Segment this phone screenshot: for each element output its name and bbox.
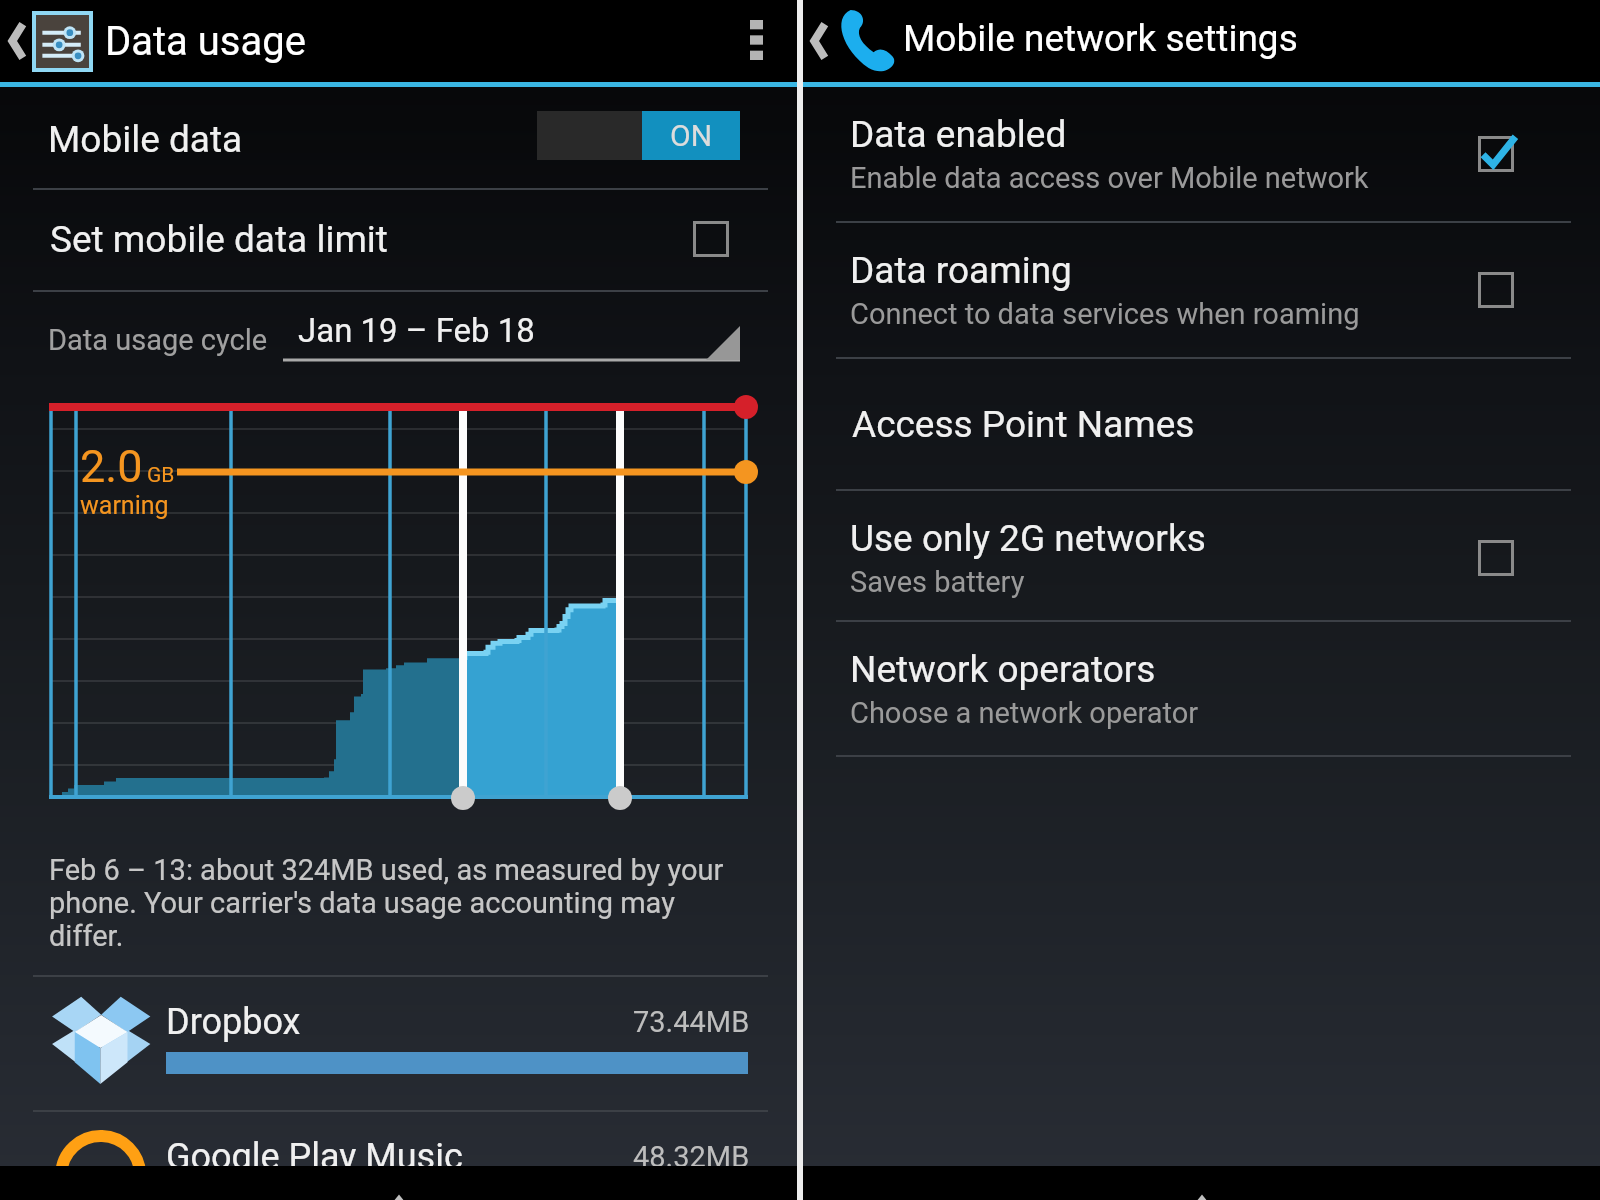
button[interactable]: Set mobile data limit <box>0 189 797 290</box>
button[interactable]: Navigate up <box>803 0 899 82</box>
staticText: Network operators <box>850 648 1156 691</box>
button[interactable]: Data usage <box>0 0 306 82</box>
button[interactable]: Data enabled <box>803 87 1600 220</box>
button[interactable]: Mobile network settings <box>899 0 1499 82</box>
staticText: Choose a network operator <box>850 696 1199 730</box>
staticText: 73.44MB <box>633 1005 750 1039</box>
staticText: Use only 2G networks <box>850 517 1206 560</box>
staticText: Set mobile data limit <box>50 218 388 261</box>
button[interactable]: Use only 2G networks <box>803 491 1600 624</box>
staticText: warning <box>80 491 169 520</box>
staticText: Dropbox <box>166 1001 301 1043</box>
button[interactable]: Unchecked <box>1478 272 1514 308</box>
staticText: Mobile network settings <box>903 17 1298 60</box>
staticText: Enable data access over Mobile network <box>850 161 1369 195</box>
staticText: 2.0 <box>80 440 143 493</box>
button[interactable]: Google Play Music <box>0 1112 797 1200</box>
button[interactable]: Network operators <box>803 622 1600 755</box>
staticText: Saves battery <box>850 565 1025 599</box>
staticText: Data enabled <box>850 113 1067 156</box>
staticText: Data roaming <box>850 249 1072 292</box>
button[interactable]: Mobile data <box>0 87 797 187</box>
staticText: Data usage cycle <box>48 323 268 357</box>
button[interactable]: Checked <box>1478 136 1514 172</box>
staticText: Jan 19 – Feb 18 <box>298 311 535 350</box>
staticText: Google Play Music <box>166 1136 463 1178</box>
staticText: Mobile data <box>48 118 243 161</box>
button[interactable]: Jan 19 – Feb 18 <box>283 300 740 362</box>
button[interactable]: Back <box>364 1178 434 1200</box>
staticText: GB <box>147 463 175 488</box>
button[interactable]: Unchecked <box>1478 540 1514 576</box>
button[interactable]: Unchecked <box>693 221 729 257</box>
staticText: ON <box>670 118 713 153</box>
staticText: Access Point Names <box>852 403 1195 446</box>
button[interactable]: Access Point Names <box>803 359 1600 489</box>
staticText: 48.32MB <box>633 1140 750 1174</box>
staticText: Data usage <box>105 18 306 65</box>
staticText: Connect to data services when roaming <box>850 297 1360 331</box>
button[interactable]: Mobile data on <box>537 111 740 160</box>
button[interactable]: Dropbox <box>0 977 797 1113</box>
button[interactable]: Data roaming <box>803 223 1600 356</box>
button[interactable]: More options <box>715 0 797 82</box>
button[interactable]: Back <box>1167 1178 1237 1200</box>
staticText: Feb 6 – 13: about 324MB used, as measure… <box>49 853 749 953</box>
